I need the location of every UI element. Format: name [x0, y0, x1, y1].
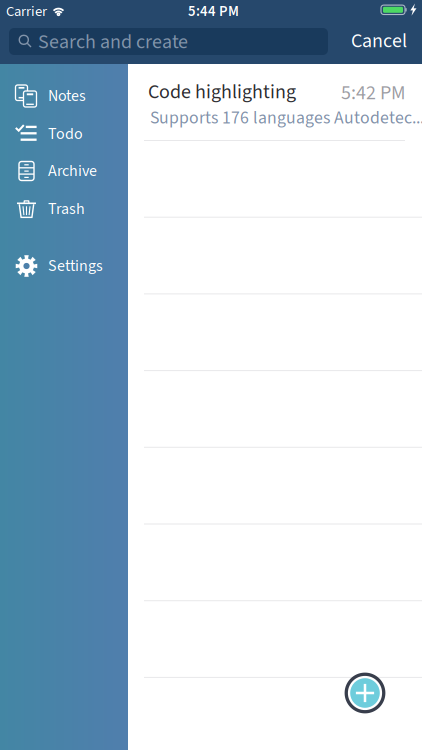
staticText: Search and create: [38, 28, 188, 56]
staticText: Supports 176 languages Autodetec...: [150, 105, 422, 131]
button[interactable]: Todo: [0, 115, 128, 153]
staticText: 5:42 PM: [341, 79, 406, 107]
staticText: Archive: [48, 160, 97, 182]
button[interactable]: Trash: [0, 190, 128, 228]
button[interactable]: Cancel: [346, 26, 412, 56]
staticText: Code highlighting: [148, 78, 296, 106]
button[interactable]: New note: [341, 669, 389, 717]
staticText: Todo: [48, 123, 83, 145]
staticText: Cancel: [351, 27, 407, 55]
staticText: Settings: [48, 255, 103, 277]
staticText: 5:44 PM: [188, 1, 239, 22]
button[interactable]: Code highlighting: [128, 64, 422, 142]
button[interactable]: Archive: [0, 152, 128, 190]
button[interactable]: Notes: [0, 77, 128, 115]
staticText: Notes: [48, 85, 86, 107]
button[interactable]: Settings: [0, 247, 128, 285]
staticText: Carrier: [6, 1, 47, 22]
staticText: Trash: [48, 198, 85, 220]
